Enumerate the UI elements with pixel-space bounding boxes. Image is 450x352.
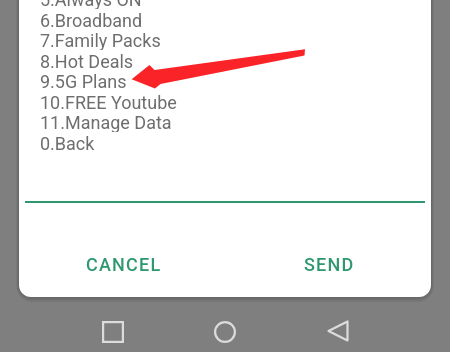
button[interactable]: CANCEL [62, 240, 186, 288]
button[interactable]: SEND [283, 240, 375, 288]
staticText: 11.Manage Data [40, 112, 172, 132]
button[interactable]: Back [314, 307, 362, 352]
button[interactable]: 6.Broadband [40, 10, 143, 30]
button[interactable]: 8.Hot Deals [40, 51, 134, 71]
button[interactable]: Home [201, 308, 249, 352]
staticText: 0.Back [40, 133, 95, 153]
button[interactable]: 10.FREE Youtube [40, 92, 177, 112]
staticText: 6.Broadband [40, 10, 143, 30]
button[interactable]: Recents [89, 308, 137, 352]
button[interactable]: 7.Family Packs [40, 30, 161, 50]
button[interactable]: 0.Back [40, 133, 95, 153]
staticText: 10.FREE Youtube [40, 92, 177, 112]
button[interactable]: 5.Always ON [40, 0, 142, 9]
button[interactable]: 11.Manage Data [40, 112, 172, 132]
staticText: CANCEL [86, 254, 162, 275]
button[interactable]: 9.5G Plans [40, 71, 127, 91]
staticText: SEND [304, 254, 355, 275]
staticText: 8.Hot Deals [40, 51, 134, 71]
staticText: 5.Always ON [40, 0, 142, 9]
staticText: 9.5G Plans [40, 71, 127, 91]
staticText: 7.Family Packs [40, 30, 161, 50]
